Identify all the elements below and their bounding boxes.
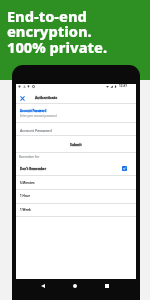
staticText: Account Password bbox=[20, 109, 47, 113]
staticText: 5 Minutes bbox=[20, 181, 35, 185]
staticText: Account Password bbox=[20, 128, 52, 133]
staticText: Don't Remember bbox=[20, 167, 47, 171]
staticText: Authenticate bbox=[35, 95, 58, 100]
staticText: Authenticate bbox=[35, 95, 58, 100]
button[interactable]: Recent apps bbox=[93, 280, 121, 292]
button[interactable]: 5 Minutes bbox=[16, 176, 136, 189]
staticText: Submit bbox=[70, 142, 82, 146]
staticText: Remember For bbox=[19, 155, 40, 159]
button[interactable]: 1 Hour bbox=[16, 189, 136, 202]
staticText: Enter your account password bbox=[20, 114, 57, 118]
button[interactable]: Home bbox=[61, 280, 89, 292]
staticText: End-to-end encryption. 100% private. bbox=[7, 6, 108, 58]
staticText: 1 Week bbox=[20, 208, 31, 212]
button[interactable]: Close bbox=[16, 92, 28, 104]
staticText: Remember For bbox=[19, 155, 40, 159]
staticText: 12:31 bbox=[119, 84, 128, 88]
staticText: 1 Week bbox=[20, 208, 31, 212]
button[interactable]: Back bbox=[29, 280, 57, 292]
staticText: Submit bbox=[70, 142, 82, 146]
staticText: 1 Hour bbox=[20, 194, 30, 198]
staticText: Account Password bbox=[20, 109, 47, 113]
staticText: Don't Remember bbox=[20, 167, 47, 171]
button[interactable]: Don't Remember bbox=[16, 162, 136, 175]
staticText: 12:31 bbox=[119, 84, 128, 88]
button[interactable]: 1 Week bbox=[16, 203, 136, 216]
staticText: Account Password bbox=[20, 128, 52, 133]
staticText: Enter your account password bbox=[20, 114, 57, 118]
staticText: 5 Minutes bbox=[20, 181, 35, 185]
staticText: 1 Hour bbox=[20, 194, 30, 198]
button[interactable]: Submit bbox=[16, 136, 136, 152]
